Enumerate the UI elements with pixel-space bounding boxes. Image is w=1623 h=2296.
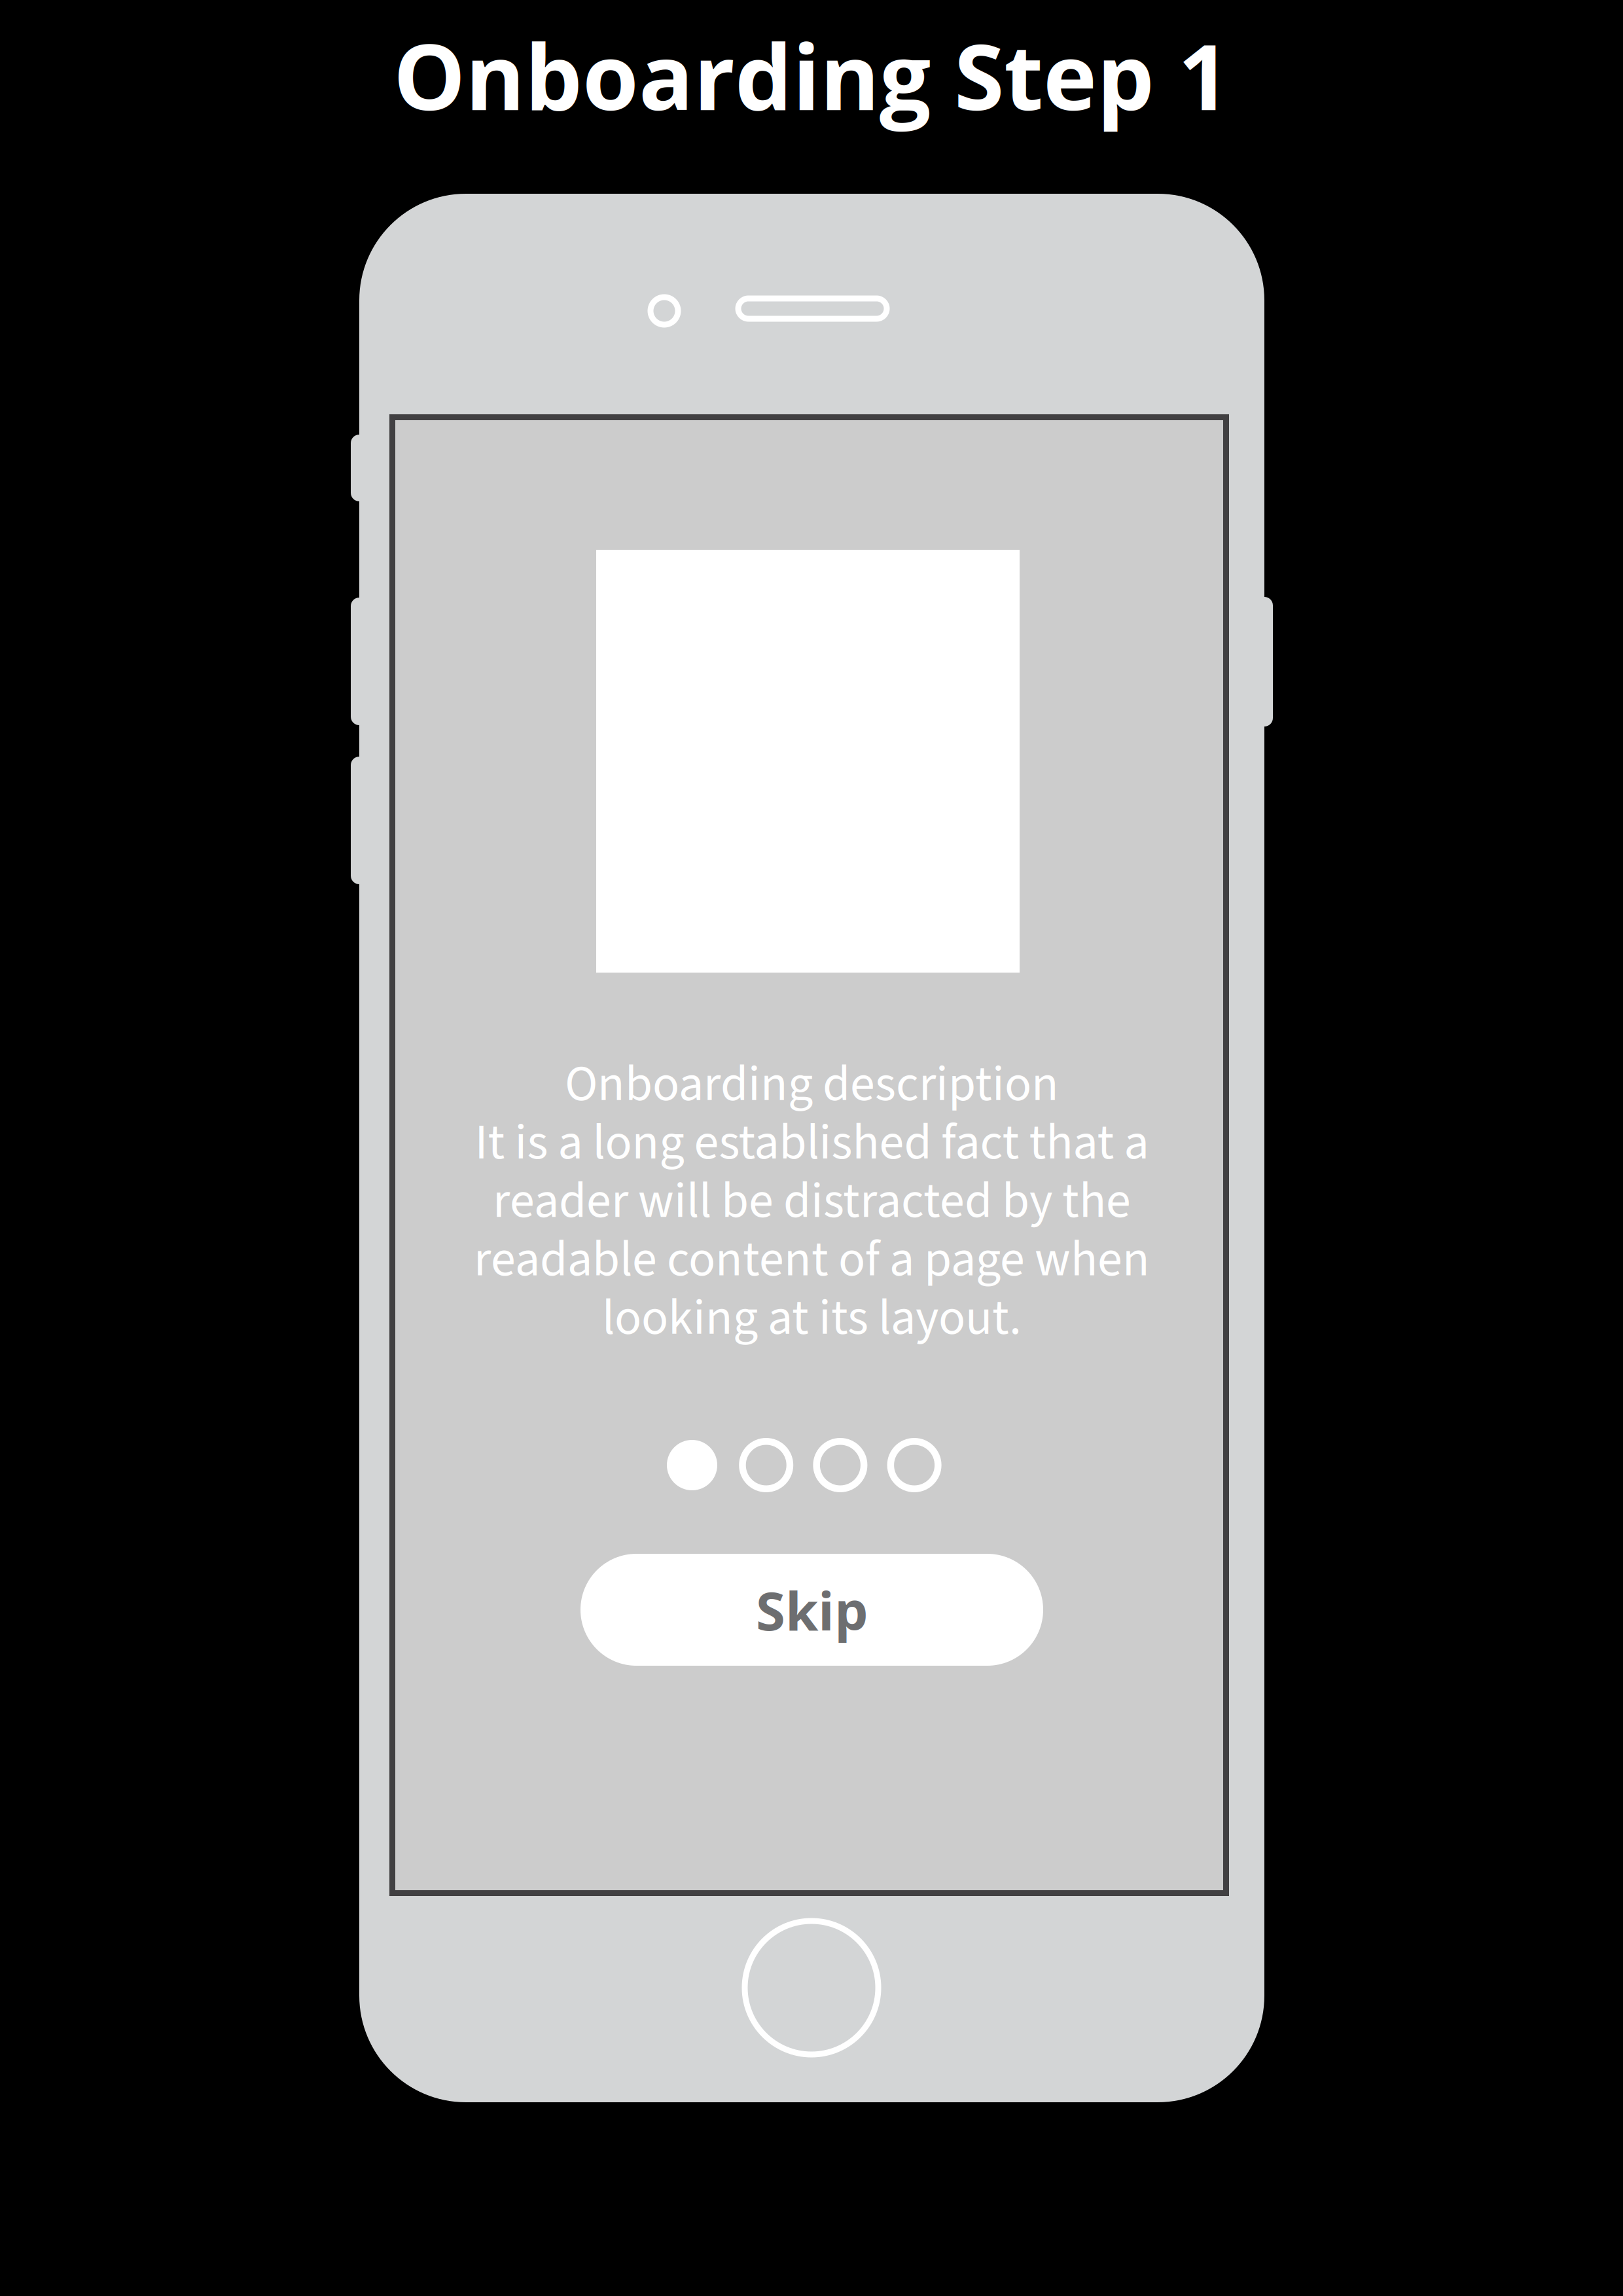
button[interactable]: Go to page 2 [739, 1438, 793, 1492]
staticText: Onboarding description [565, 1049, 1059, 1120]
button[interactable]: Go to page 4 [887, 1438, 941, 1492]
staticText: readable content of a page when [474, 1224, 1150, 1295]
staticText: Onboarding Step 1 [393, 13, 1230, 137]
staticText: Skip [756, 1573, 868, 1646]
button[interactable]: Go to page 3 [813, 1438, 867, 1492]
staticText: It is a long established fact that a [475, 1108, 1149, 1178]
staticText: reader will be distracted by the [493, 1166, 1131, 1237]
button[interactable]: Skip [580, 1554, 1043, 1666]
button[interactable]: Page 1 of 4, current page [665, 1438, 719, 1492]
staticText: looking at its layout. [602, 1283, 1022, 1354]
